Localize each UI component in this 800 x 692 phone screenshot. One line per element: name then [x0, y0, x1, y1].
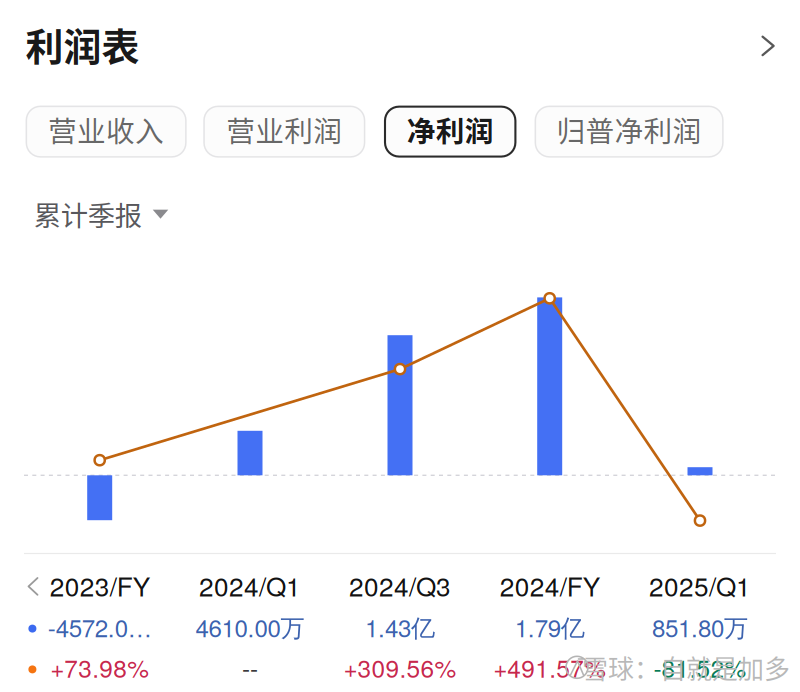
button[interactable]: Open profit statement: [0, 0, 800, 692]
staticText: 营业利润: [226, 109, 342, 150]
staticText: 雪球：自就是加多: [582, 649, 790, 686]
staticText: 归普净利润: [557, 109, 702, 150]
button[interactable]: 营业利润: [203, 106, 365, 158]
staticText: +491.57%: [493, 650, 606, 685]
button[interactable]: 净利润: [384, 106, 516, 158]
staticText: 净利润: [407, 109, 494, 150]
staticText: 2024/Q3: [349, 567, 451, 604]
staticText: 1.79亿: [515, 610, 585, 644]
button[interactable]: 归普净利润: [535, 106, 724, 158]
staticText: 利润表: [25, 17, 139, 72]
staticText: 2023/FY: [50, 567, 150, 604]
staticText: +309.56%: [343, 650, 456, 685]
button[interactable]: 累计季报: [34, 194, 168, 234]
staticText: 851.80万: [652, 610, 748, 644]
staticText: +73.98%: [50, 650, 149, 685]
staticText: --: [242, 650, 258, 685]
staticText: 2025/Q1: [649, 567, 751, 604]
staticText: -4572.0…: [48, 610, 152, 644]
button[interactable]: Previous periods: [0, 0, 800, 692]
staticText: 2024/FY: [500, 567, 600, 604]
staticText: 1.43亿: [365, 610, 435, 644]
staticText: 累计季报: [34, 194, 142, 234]
staticText: 2024/Q1: [199, 567, 301, 604]
button[interactable]: 营业收入: [26, 106, 187, 158]
staticText: 营业收入: [48, 109, 164, 150]
staticText: -81.52%: [653, 650, 746, 685]
staticText: 4610.00万: [195, 610, 304, 644]
